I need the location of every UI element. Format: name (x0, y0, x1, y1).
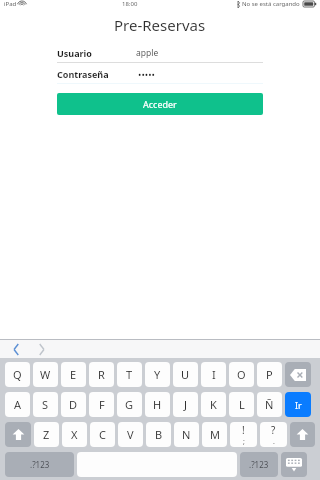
staticText: .?123 (249, 459, 269, 470)
staticText: R (98, 367, 105, 382)
staticText: D (69, 397, 78, 412)
staticText: Acceder (143, 98, 177, 110)
staticText: I (212, 367, 216, 382)
staticText: S (42, 397, 49, 412)
button[interactable]: Anterior (8, 341, 24, 357)
button[interactable]: K (201, 392, 226, 417)
button[interactable]: Acceder (57, 93, 263, 115)
staticText: F (99, 397, 105, 412)
button[interactable]: F (89, 392, 114, 417)
staticText: T (126, 367, 133, 382)
button[interactable]: Ir (285, 392, 311, 417)
staticText: Y (154, 367, 161, 382)
button[interactable]: T (117, 362, 142, 387)
button[interactable]: U (173, 362, 198, 387)
button[interactable]: C (90, 422, 115, 447)
staticText: ; (243, 437, 245, 447)
staticText: P (266, 367, 273, 382)
staticText: E (70, 367, 77, 382)
button[interactable]: V (118, 422, 143, 447)
button[interactable]: O (229, 362, 254, 387)
staticText: . (273, 437, 275, 447)
button[interactable]: P (257, 362, 282, 387)
staticText: ! (242, 423, 245, 437)
staticText: apple (136, 47, 159, 59)
button[interactable]: .?123 (5, 452, 74, 477)
button[interactable]: R (89, 362, 114, 387)
button[interactable]: Usuario (57, 42, 263, 63)
staticText: A (14, 397, 22, 412)
button[interactable]: Q (5, 362, 30, 387)
staticText: B (155, 427, 163, 442)
button[interactable]: ! (230, 422, 257, 447)
staticText: .?123 (30, 459, 50, 470)
staticText: V (127, 427, 134, 442)
button[interactable]: N (174, 422, 199, 447)
button[interactable]: ? (260, 422, 287, 447)
staticText: Z (43, 427, 50, 442)
button[interactable]: D (61, 392, 86, 417)
button[interactable]: W (33, 362, 58, 387)
button[interactable]: Ñ (257, 392, 282, 417)
staticText: C (99, 427, 106, 442)
staticText: H (153, 397, 162, 412)
button[interactable]: Siguiente (33, 341, 49, 357)
button[interactable]: Mayúsculas (290, 422, 315, 447)
staticText: Q (13, 367, 22, 382)
staticText: Usuario (57, 47, 92, 59)
staticText: Ir (295, 399, 302, 411)
button[interactable]: Ocultar teclado (281, 452, 307, 477)
button[interactable]: Mayúsculas (5, 422, 31, 447)
staticText: O (237, 367, 246, 382)
staticText: M (210, 427, 220, 442)
staticText: Ñ (265, 397, 274, 412)
staticText: Pre-Reservas (114, 15, 206, 35)
button[interactable]: Retroceso (285, 362, 311, 387)
button[interactable]: L (229, 392, 254, 417)
button[interactable]: H (145, 392, 170, 417)
button[interactable]: J (173, 392, 198, 417)
button[interactable]: .?123 (240, 452, 278, 477)
staticText: No se está cargando (242, 0, 300, 8)
staticText: G (125, 397, 134, 412)
staticText: W (40, 367, 51, 382)
button[interactable]: Y (145, 362, 170, 387)
staticText: Contraseña (57, 68, 109, 80)
button[interactable]: M (202, 422, 227, 447)
staticText: ? (271, 423, 276, 437)
staticText: 18:00 (122, 0, 138, 8)
staticText: N (182, 427, 191, 442)
staticText: U (181, 367, 190, 382)
button[interactable]: Z (34, 422, 59, 447)
staticText: J (184, 397, 188, 412)
button[interactable]: G (117, 392, 142, 417)
staticText: ••••• (138, 68, 155, 80)
button[interactable]: Contraseña (57, 63, 263, 84)
button[interactable]: I (201, 362, 226, 387)
button[interactable]: S (33, 392, 58, 417)
staticText: L (239, 397, 245, 412)
staticText: iPad (4, 0, 17, 8)
button[interactable]: A (5, 392, 30, 417)
staticText: X (71, 427, 78, 442)
button[interactable]: B (146, 422, 171, 447)
button[interactable]: X (62, 422, 87, 447)
staticText: K (210, 397, 217, 412)
button[interactable]: E (61, 362, 86, 387)
